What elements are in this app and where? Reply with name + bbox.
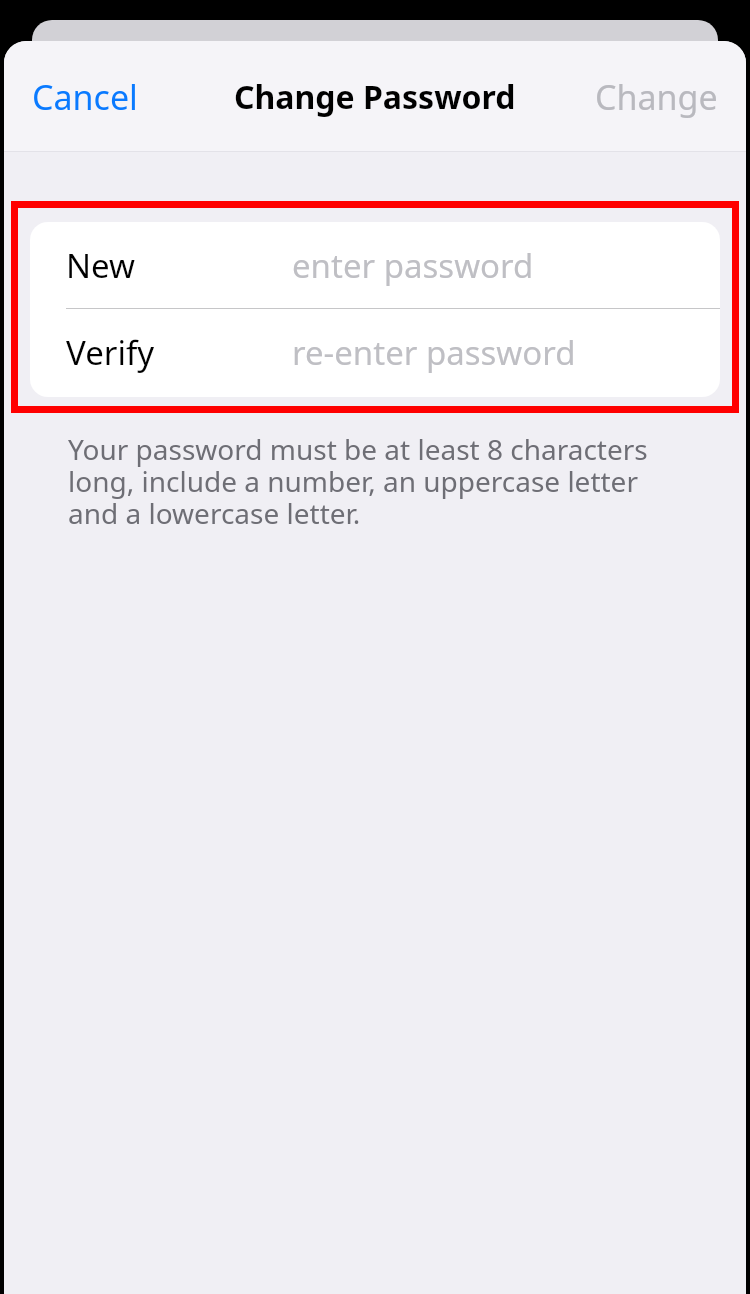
staticText: Verify — [66, 330, 155, 375]
staticText: Change — [595, 74, 718, 120]
button[interactable]: Verify — [30, 309, 720, 396]
staticText: Your password must be at least 8 charact… — [68, 430, 690, 532]
button[interactable]: New — [30, 222, 720, 309]
button[interactable]: Cancel — [18, 64, 152, 130]
staticText: re-enter password — [292, 330, 576, 375]
staticText: New — [66, 243, 135, 288]
staticText: enter password — [292, 243, 534, 288]
staticText: Cancel — [32, 74, 138, 120]
staticText: Change Password — [234, 75, 516, 119]
button[interactable]: Change — [581, 64, 732, 130]
